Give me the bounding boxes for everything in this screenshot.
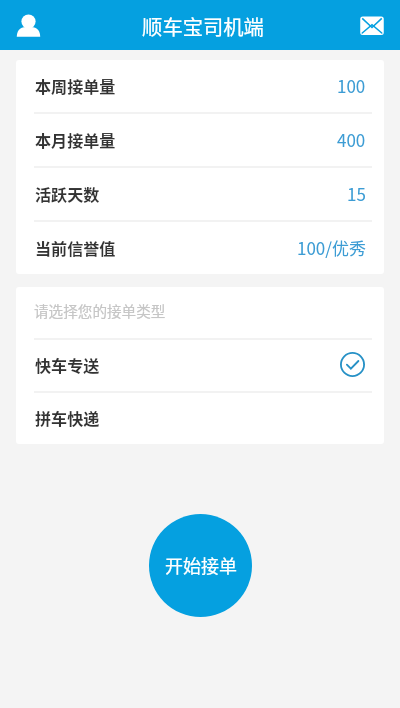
staticText: 100/优秀 bbox=[297, 235, 366, 260]
staticText: 快车专送 bbox=[35, 353, 100, 376]
staticText: 本周接单量 bbox=[35, 74, 116, 97]
button[interactable]: 拼车快递 bbox=[16, 393, 384, 444]
staticText: 请选择您的接单类型 bbox=[34, 300, 166, 321]
staticText: 当前信誉值 bbox=[35, 236, 116, 259]
button[interactable]: 开始接单 bbox=[149, 514, 252, 617]
button[interactable]: 快车专送 bbox=[16, 340, 384, 391]
staticText: 顺车宝司机端 bbox=[142, 11, 264, 40]
staticText: 本月接单量 bbox=[35, 128, 116, 151]
staticText: 开始接单 bbox=[165, 552, 237, 578]
button[interactable]: 本月接单量 bbox=[16, 114, 384, 166]
staticText: 100 bbox=[337, 73, 366, 98]
staticText: 拼车快递 bbox=[35, 406, 100, 429]
button[interactable]: Messages bbox=[354, 7, 390, 43]
staticText: 400 bbox=[337, 127, 366, 152]
button[interactable]: 本周接单量 bbox=[16, 60, 384, 112]
button[interactable]: Profile bbox=[10, 7, 46, 43]
staticText: 活跃天数 bbox=[35, 182, 100, 205]
button[interactable]: 当前信誉值 bbox=[16, 222, 384, 274]
staticText: 15 bbox=[347, 181, 366, 206]
button[interactable]: 活跃天数 bbox=[16, 168, 384, 220]
